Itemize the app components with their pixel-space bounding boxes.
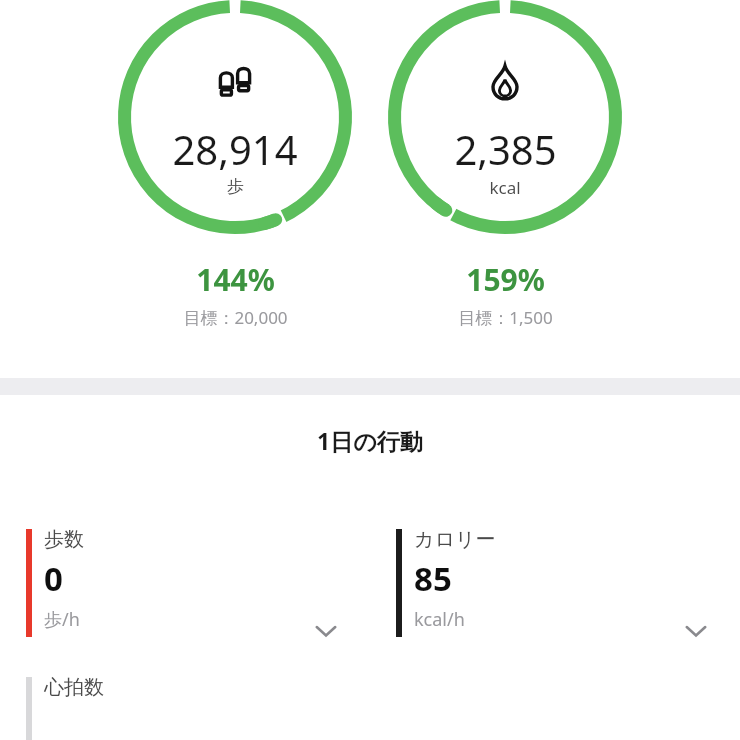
- staticText: kcal: [489, 176, 521, 199]
- staticText: カロリー: [414, 527, 496, 552]
- button[interactable]: 2,385: [370, 0, 640, 378]
- staticText: 心拍数: [44, 675, 104, 700]
- button[interactable]: 28,914: [100, 0, 370, 378]
- staticText: 歩/h: [44, 607, 80, 632]
- staticText: 歩数: [44, 527, 84, 552]
- staticText: 目標：1,500: [458, 306, 553, 329]
- staticText: kcal/h: [414, 607, 465, 632]
- button[interactable]: 心拍数: [0, 663, 370, 740]
- button[interactable]: Expand カロリー: [676, 611, 716, 651]
- staticText: 0: [44, 556, 63, 601]
- staticText: 144%: [196, 259, 275, 300]
- staticText: 2,385: [454, 122, 557, 176]
- button[interactable]: Expand 歩数: [306, 611, 346, 651]
- staticText: 1日の行動: [317, 425, 423, 456]
- staticText: 28,914: [172, 122, 298, 176]
- staticText: 159%: [466, 259, 545, 300]
- staticText: 85: [414, 556, 452, 601]
- staticText: 目標：20,000: [183, 306, 288, 329]
- button[interactable]: 歩数: [0, 515, 370, 655]
- button[interactable]: カロリー: [370, 515, 740, 655]
- staticText: 歩: [227, 176, 244, 197]
